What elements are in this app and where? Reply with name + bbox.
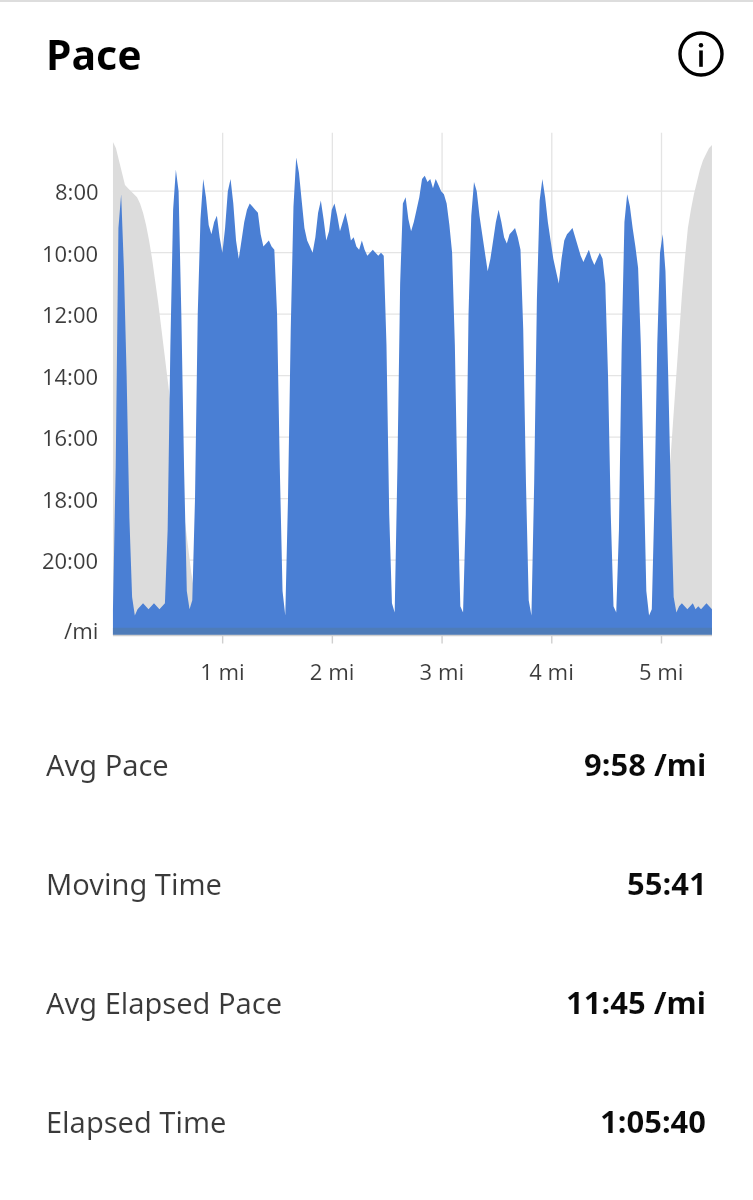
staticText: 11:45 /mi [566, 981, 707, 1023]
button[interactable]: Avg Elapsed Pace [0, 974, 753, 1030]
button[interactable]: Elapsed Time [0, 1093, 753, 1149]
button[interactable]: Info [673, 26, 729, 82]
button[interactable]: Moving Time [0, 855, 753, 911]
staticText: Moving Time [46, 864, 222, 903]
staticText: 9:58 /mi [584, 743, 707, 785]
staticText: 1:05:40 [600, 1100, 707, 1142]
staticText: Avg Pace [46, 745, 169, 784]
staticText: Elapsed Time [46, 1102, 227, 1141]
staticText: 55:41 [627, 862, 707, 904]
staticText: Avg Elapsed Pace [46, 983, 283, 1022]
staticText: Pace [46, 26, 142, 82]
button[interactable]: Avg Pace [0, 736, 753, 792]
